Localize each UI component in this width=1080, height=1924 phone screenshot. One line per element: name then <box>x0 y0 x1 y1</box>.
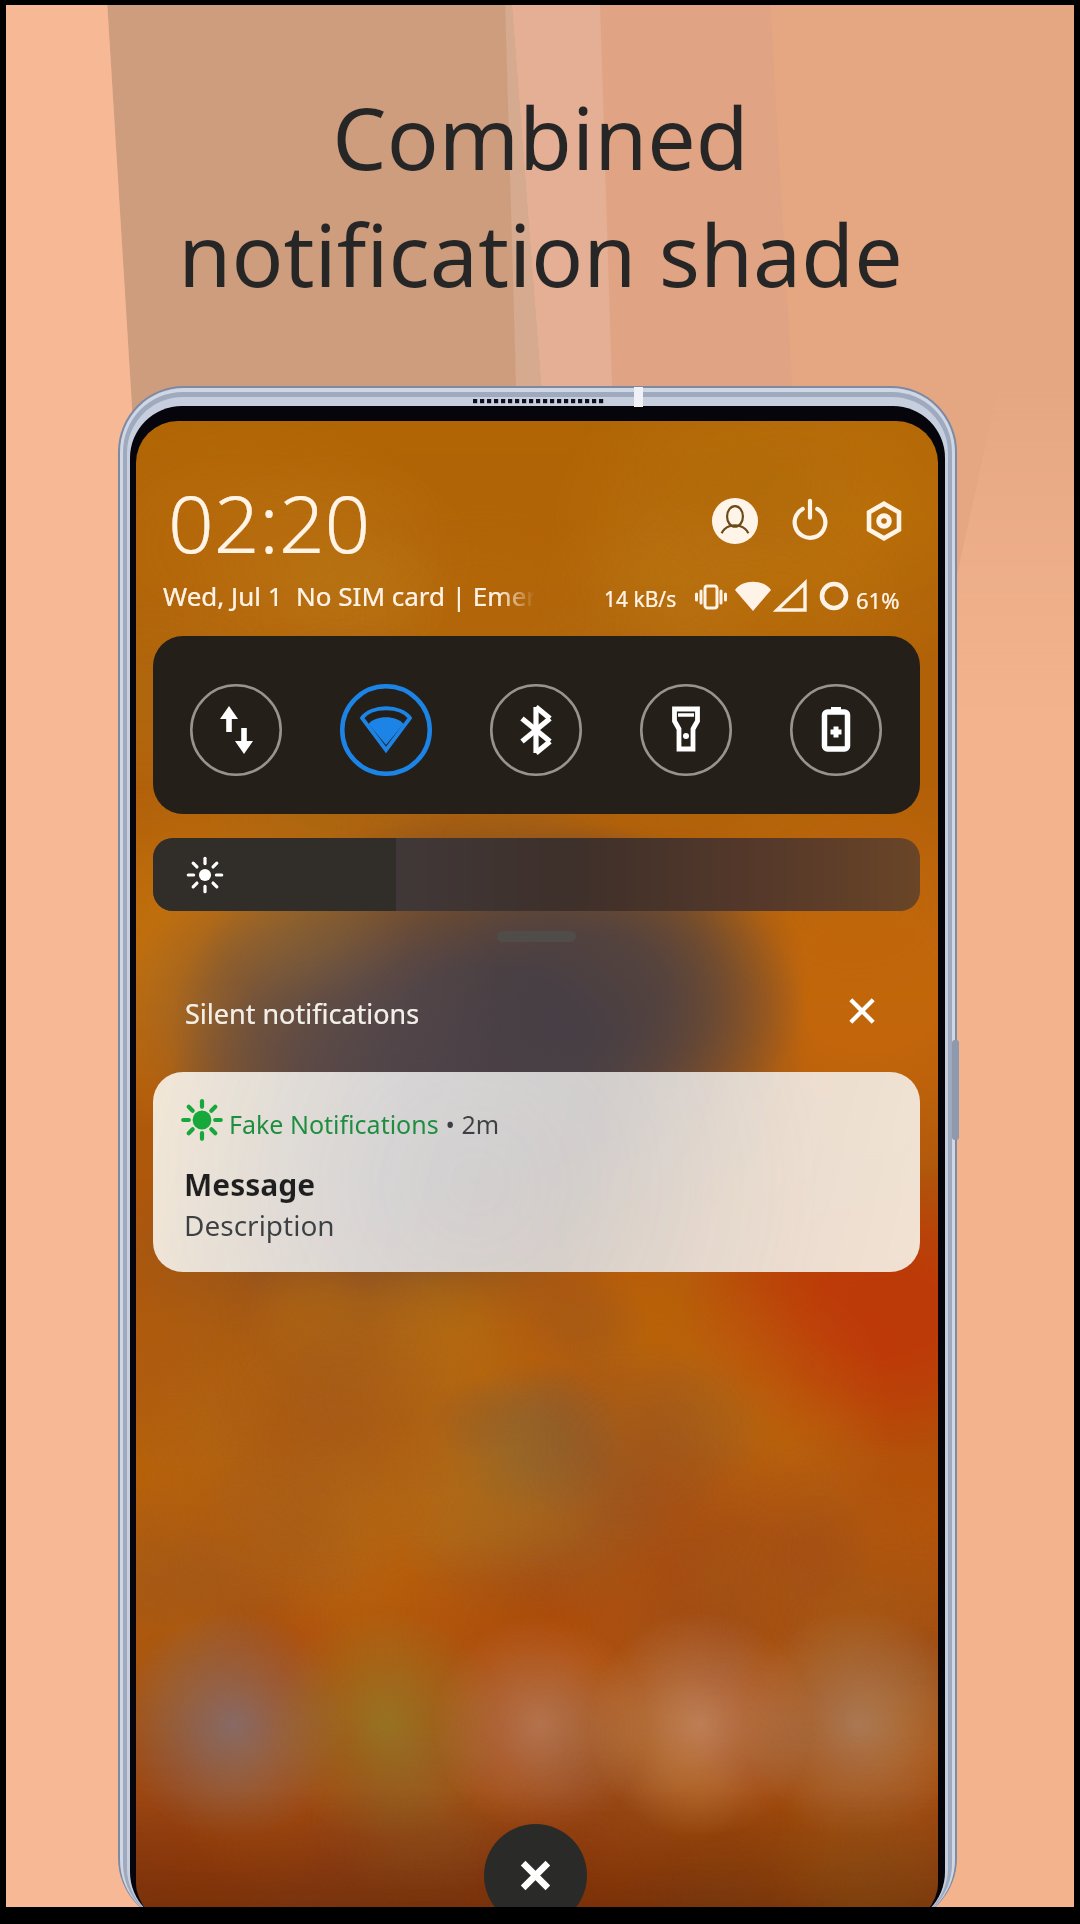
staticText: Wed, Jul 1 No SIM card | Emergency calls <box>163 578 535 613</box>
staticText: Description <box>184 1206 335 1244</box>
button[interactable]: Wi-Fi <box>339 683 433 777</box>
staticText: Silent notifications <box>185 995 420 1032</box>
button[interactable]: Fake Notifications <box>153 1072 920 1272</box>
button[interactable]: Flashlight <box>639 683 733 777</box>
staticText: notification shade <box>178 195 903 312</box>
button[interactable]: Brightness <box>153 838 920 911</box>
button[interactable]: Bluetooth <box>489 683 583 777</box>
button[interactable]: Power <box>786 497 834 545</box>
staticText: 14 kB/s <box>604 585 677 614</box>
button[interactable]: Battery saver <box>789 683 883 777</box>
button[interactable]: Mobile data <box>189 683 283 777</box>
button[interactable]: Clear silent notifications <box>834 983 890 1039</box>
button[interactable]: Close <box>484 1824 587 1924</box>
staticText: 61% <box>856 585 900 615</box>
staticText: Combined <box>332 78 749 195</box>
staticText: Message <box>184 1164 316 1205</box>
button[interactable]: Account <box>711 497 759 545</box>
staticText: Fake Notifications <box>229 1107 439 1141</box>
staticText: • 2m <box>439 1107 500 1141</box>
button[interactable]: Settings <box>860 497 908 545</box>
staticText: 02:20 <box>168 467 371 576</box>
